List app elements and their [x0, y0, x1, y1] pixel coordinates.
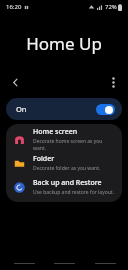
button[interactable]: Recents: [7, 256, 41, 270]
staticText: Decorate home screen as you want.: [33, 138, 115, 151]
button[interactable]: Back: [88, 256, 122, 270]
button[interactable]: Folder: [6, 151, 122, 175]
button[interactable]: Home: [47, 256, 81, 270]
staticText: 72%: [105, 3, 117, 11]
staticText: Use backup and restore for layout.: [33, 189, 114, 196]
staticText: Home screen: [33, 127, 78, 137]
staticText: Home Up: [26, 32, 102, 55]
staticText: Folder: [33, 154, 55, 164]
button[interactable]: Back up and Restore: [6, 175, 122, 199]
button[interactable]: More options: [104, 73, 122, 91]
staticText: Back up and Restore: [33, 178, 102, 188]
staticText: On: [16, 104, 27, 114]
button[interactable]: Home screen: [6, 127, 122, 151]
button[interactable]: Back: [6, 73, 24, 91]
staticText: 16:20: [6, 3, 22, 11]
staticText: Decorate folder as you want.: [33, 165, 101, 172]
button[interactable]: On: [6, 98, 122, 120]
